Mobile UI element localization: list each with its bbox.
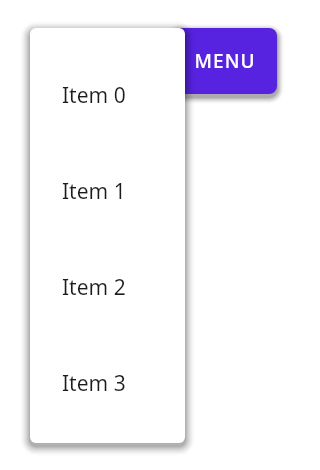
button[interactable]: Item 1	[30, 143, 185, 239]
staticText: Item 3	[62, 369, 126, 398]
staticText: MENU	[194, 48, 256, 74]
button[interactable]: Item 2	[30, 239, 185, 335]
button[interactable]: MENU	[172, 28, 277, 94]
staticText: Item 2	[62, 273, 126, 302]
staticText: Item 0	[62, 81, 126, 110]
button[interactable]: Item 0	[30, 47, 185, 143]
staticText: Item 1	[62, 177, 126, 206]
button[interactable]: Item 3	[30, 335, 185, 431]
